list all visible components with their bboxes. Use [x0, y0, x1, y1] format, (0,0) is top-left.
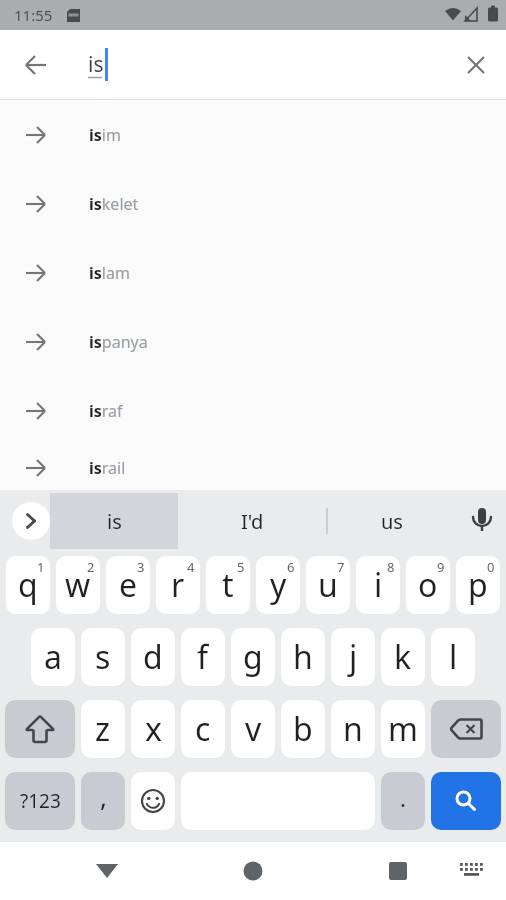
button[interactable]: ?123 — [5, 772, 75, 830]
staticText: 3 — [137, 558, 145, 576]
staticText: q — [18, 563, 38, 607]
button[interactable]: is — [50, 493, 178, 549]
staticText: 9 — [437, 558, 445, 576]
staticText: . — [400, 783, 406, 813]
button[interactable]: m — [381, 700, 425, 758]
staticText: a — [44, 635, 62, 679]
staticText: 0 — [487, 558, 495, 576]
staticText: x — [145, 707, 162, 751]
button[interactable]: t — [206, 556, 250, 614]
staticText: n — [343, 707, 363, 751]
button[interactable]: u — [306, 556, 350, 614]
staticText: e — [119, 563, 138, 607]
button[interactable] — [451, 490, 506, 552]
staticText: m — [388, 707, 418, 751]
staticText: i — [374, 563, 383, 607]
button[interactable]: h — [281, 628, 325, 686]
button[interactable]: e — [106, 556, 150, 614]
staticText: k — [394, 635, 412, 679]
staticText: 7 — [337, 558, 345, 576]
staticText: l — [449, 635, 458, 679]
button[interactable]: f — [181, 628, 225, 686]
button[interactable]: i — [356, 556, 400, 614]
button[interactable] — [131, 772, 175, 830]
staticText: t — [222, 563, 234, 607]
button[interactable] — [337, 842, 506, 900]
button[interactable]: l — [431, 628, 475, 686]
button[interactable]: isim — [0, 100, 506, 169]
staticText: 4 — [187, 558, 195, 576]
button[interactable]: c — [181, 700, 225, 758]
button[interactable] — [0, 842, 168, 900]
staticText: israf — [89, 400, 123, 422]
button[interactable] — [12, 502, 50, 540]
button[interactable]: ispanya — [0, 307, 506, 376]
button[interactable]: z — [81, 700, 125, 758]
staticText: d — [143, 635, 163, 679]
button[interactable] — [431, 772, 501, 830]
button[interactable]: islam — [0, 238, 506, 307]
staticText: isim — [89, 124, 121, 146]
staticText: 8 — [387, 558, 395, 576]
staticText: p — [468, 563, 488, 607]
button[interactable] — [168, 842, 337, 900]
button[interactable]: I'd — [178, 490, 327, 552]
button[interactable]: d — [131, 628, 175, 686]
staticText: 6 — [287, 558, 295, 576]
button[interactable] — [5, 700, 75, 758]
button[interactable]: israf — [0, 376, 506, 445]
staticText: o — [418, 563, 438, 607]
staticText: is — [88, 50, 104, 79]
button[interactable]: s — [81, 628, 125, 686]
button[interactable]: w — [56, 556, 100, 614]
button[interactable] — [16, 45, 56, 85]
button[interactable] — [431, 700, 501, 758]
button[interactable]: x — [131, 700, 175, 758]
staticText: s — [95, 635, 111, 679]
button[interactable]: a — [31, 628, 75, 686]
staticText: w — [65, 563, 91, 607]
staticText: r — [171, 563, 185, 607]
staticText: islam — [89, 262, 130, 284]
staticText: h — [293, 635, 313, 679]
staticText: z — [95, 707, 111, 751]
button[interactable]: , — [81, 772, 125, 830]
button[interactable]: g — [231, 628, 275, 686]
staticText: ispanya — [89, 331, 148, 353]
button[interactable]: n — [331, 700, 375, 758]
staticText: b — [293, 707, 313, 751]
staticText: g — [243, 635, 263, 679]
button[interactable]: v — [231, 700, 275, 758]
staticText: v — [245, 707, 262, 751]
staticText: c — [195, 707, 211, 751]
staticText: 1 — [37, 558, 45, 576]
staticText: is — [107, 508, 122, 535]
button[interactable]: israil — [0, 445, 506, 490]
staticText: I'd — [241, 508, 264, 535]
button[interactable]: o — [406, 556, 450, 614]
button[interactable] — [458, 47, 494, 83]
button[interactable]: us — [327, 490, 457, 552]
button[interactable]: . — [381, 772, 425, 830]
staticText: y — [270, 563, 287, 607]
button[interactable]: q — [6, 556, 50, 614]
staticText: us — [381, 508, 403, 535]
button[interactable]: k — [381, 628, 425, 686]
staticText: ?123 — [20, 788, 61, 814]
button[interactable]: j — [331, 628, 375, 686]
button[interactable]: y — [256, 556, 300, 614]
button[interactable]: iskelet — [0, 169, 506, 238]
staticText: iskelet — [89, 193, 139, 215]
staticText: f — [197, 635, 209, 679]
staticText: 5 — [237, 558, 245, 576]
staticText: , — [100, 779, 107, 814]
button[interactable]: p — [456, 556, 500, 614]
button[interactable]: b — [281, 700, 325, 758]
staticText: j — [349, 635, 358, 679]
staticText: 11:55 — [14, 5, 53, 25]
staticText: u — [318, 563, 338, 607]
staticText: israil — [89, 457, 126, 479]
staticText: 2 — [87, 558, 95, 576]
button[interactable]: r — [156, 556, 200, 614]
